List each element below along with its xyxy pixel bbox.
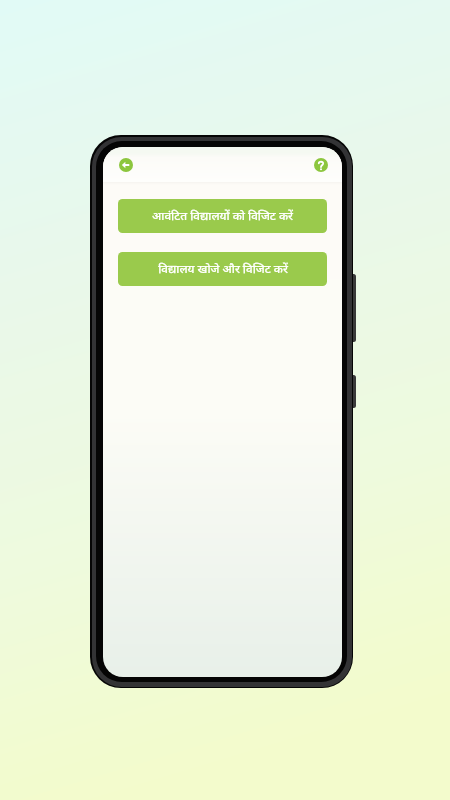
button[interactable]: विद्यालय खोजे और विजिट करें [118, 252, 327, 286]
button[interactable]: आवंटित विद्यालयों को विजिट करें [118, 199, 327, 233]
staticText: आवंटित विद्यालयों को विजिट करें [152, 207, 293, 223]
staticText: विद्यालय खोजे और विजिट करें [158, 260, 288, 276]
button[interactable]: Help [310, 154, 332, 176]
button[interactable]: Back [115, 154, 137, 176]
